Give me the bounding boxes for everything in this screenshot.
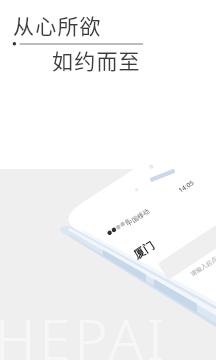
staticText: 从心所欲 xyxy=(13,10,102,40)
staticText: 厦门 xyxy=(131,238,157,262)
staticText: 请输入起点或终点 xyxy=(189,245,216,278)
staticText: 中国移动 xyxy=(125,207,151,228)
staticText: 14:05 xyxy=(177,178,196,195)
staticText: 如约而至 xyxy=(52,45,141,75)
